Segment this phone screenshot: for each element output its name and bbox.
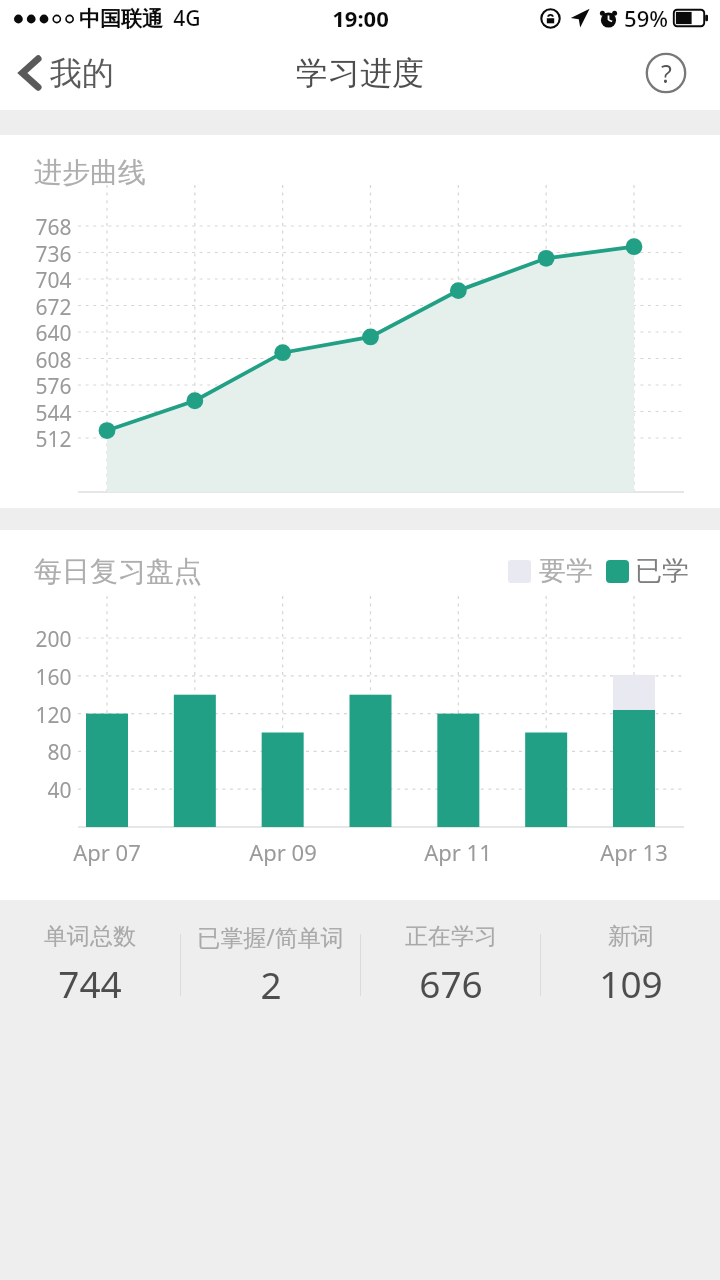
- button[interactable]: 我的: [0, 41, 132, 105]
- staticText: 进步曲线: [34, 155, 146, 190]
- staticText: 已学: [635, 554, 689, 588]
- staticText: 704: [35, 266, 72, 295]
- staticText: 19:00: [332, 3, 389, 33]
- staticText: 59%: [624, 3, 668, 33]
- staticText: 676: [419, 958, 483, 1008]
- staticText: 109: [599, 958, 663, 1008]
- staticText: Apr 07: [73, 502, 141, 532]
- staticText: 4G: [173, 4, 201, 33]
- staticText: 672: [35, 293, 72, 322]
- staticText: 学习进度: [296, 53, 424, 93]
- staticText: Apr 11: [424, 502, 492, 532]
- staticText: Apr 09: [249, 502, 317, 532]
- staticText: ?: [661, 56, 672, 90]
- staticText: 768: [35, 213, 72, 242]
- button[interactable]: 新词: [541, 922, 720, 1008]
- staticText: 576: [35, 372, 72, 401]
- staticText: 744: [58, 958, 122, 1008]
- staticText: 80: [47, 738, 72, 767]
- staticText: 608: [35, 346, 72, 375]
- staticText: 已掌握/简单词: [197, 921, 344, 952]
- staticText: Apr 13: [600, 502, 668, 532]
- staticText: 正在学习: [405, 922, 497, 951]
- staticText: 新词: [608, 922, 654, 951]
- staticText: 每日复习盘点: [34, 554, 202, 589]
- staticText: 544: [35, 399, 72, 428]
- staticText: Apr 09: [249, 837, 317, 867]
- staticText: 我的: [50, 53, 114, 93]
- staticText: 2: [260, 959, 282, 1009]
- staticText: 120: [35, 701, 72, 730]
- button[interactable]: 单词总数: [0, 922, 180, 1008]
- staticText: Apr 07: [73, 837, 141, 867]
- staticText: Apr 11: [424, 837, 492, 867]
- staticText: 要学: [539, 554, 593, 588]
- staticText: 160: [35, 663, 72, 692]
- staticText: 中国联通: [79, 6, 163, 32]
- staticText: Apr 13: [600, 837, 668, 867]
- staticText: 736: [35, 240, 72, 269]
- staticText: 200: [35, 625, 72, 654]
- staticText: 单词总数: [44, 922, 136, 951]
- staticText: 640: [35, 319, 72, 348]
- staticText: 40: [47, 776, 72, 805]
- staticText: 512: [35, 425, 72, 454]
- button[interactable]: 已掌握/简单词: [181, 921, 360, 1009]
- button[interactable]: 正在学习: [361, 922, 540, 1008]
- button[interactable]: Help: [644, 51, 688, 95]
